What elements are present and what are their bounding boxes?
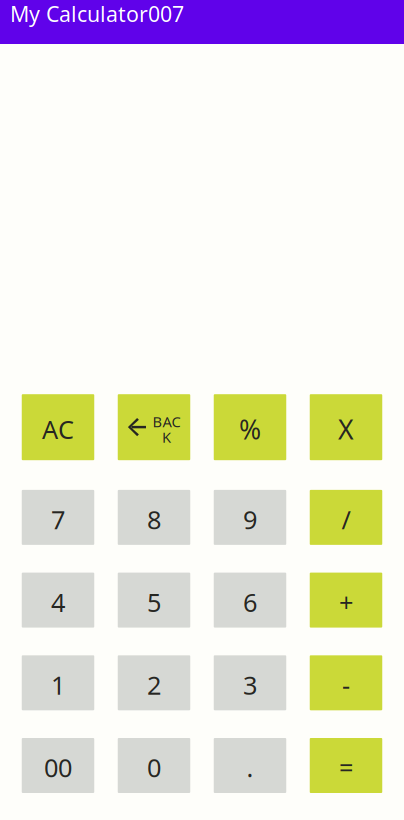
staticText: AC xyxy=(42,412,74,446)
staticText: X xyxy=(338,411,354,447)
button[interactable]: 4 xyxy=(22,573,94,628)
button[interactable]: 00 xyxy=(22,738,94,793)
button[interactable]: = xyxy=(310,738,382,793)
staticText: = xyxy=(339,751,353,784)
staticText: 6 xyxy=(243,585,257,619)
staticText: . xyxy=(246,751,253,784)
button[interactable]: - xyxy=(310,655,382,710)
staticText: 1 xyxy=(51,668,65,702)
button[interactable]: 2 xyxy=(118,655,190,710)
staticText: K xyxy=(162,427,171,447)
staticText: 2 xyxy=(147,668,161,702)
staticText: 0 xyxy=(147,751,161,784)
staticText: 4 xyxy=(51,585,65,619)
button[interactable]: 9 xyxy=(214,490,286,545)
staticText: + xyxy=(339,585,353,619)
staticText: 7 xyxy=(51,503,65,536)
staticText: 3 xyxy=(243,668,257,702)
button[interactable]: % xyxy=(214,394,286,460)
button[interactable]: 7 xyxy=(22,490,94,545)
button[interactable]: Back xyxy=(118,394,190,460)
button[interactable]: AC xyxy=(22,394,94,460)
button[interactable]: X xyxy=(310,394,382,460)
button[interactable]: 3 xyxy=(214,655,286,710)
staticText: / xyxy=(341,503,350,536)
button[interactable]: 0 xyxy=(118,738,190,793)
button[interactable]: . xyxy=(214,738,286,793)
button[interactable]: + xyxy=(310,573,382,628)
staticText: - xyxy=(342,668,350,702)
button[interactable]: / xyxy=(310,490,382,545)
staticText: My Calculator007 xyxy=(10,0,184,28)
staticText: 00 xyxy=(44,751,72,784)
button[interactable]: 6 xyxy=(214,573,286,628)
button[interactable]: 1 xyxy=(22,655,94,710)
staticText: % xyxy=(239,411,261,447)
staticText: BAC xyxy=(152,412,180,431)
staticText: 9 xyxy=(243,503,257,536)
button[interactable]: 5 xyxy=(118,573,190,628)
button[interactable]: 8 xyxy=(118,490,190,545)
staticText: 8 xyxy=(147,503,161,536)
staticText: 5 xyxy=(147,585,161,619)
